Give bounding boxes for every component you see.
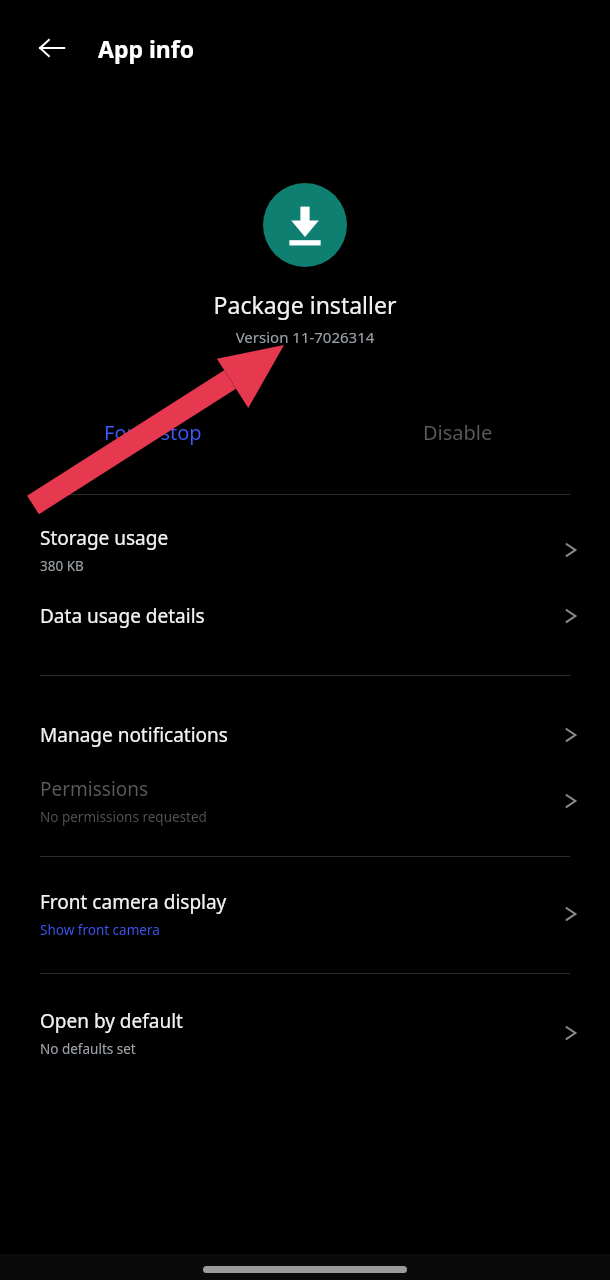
- staticText: Package installer: [0, 289, 610, 320]
- staticText: 380 KB: [40, 557, 84, 575]
- staticText: No defaults set: [40, 1040, 136, 1058]
- staticText: Front camera display: [40, 889, 227, 915]
- staticText: Version 11-7026314: [0, 327, 610, 347]
- staticText: Permissions: [40, 776, 149, 802]
- staticText: App info: [98, 33, 195, 64]
- staticText: Show front camera: [40, 921, 160, 939]
- staticText: No permissions requested: [40, 808, 207, 826]
- button[interactable]: Open by default: [0, 1000, 610, 1066]
- button[interactable]: Permissions: [0, 768, 610, 834]
- button[interactable]: Data usage details: [0, 583, 610, 649]
- button[interactable]: Disable: [305, 419, 610, 446]
- staticText: Force stop: [104, 419, 202, 446]
- staticText: Data usage details: [40, 603, 205, 629]
- button[interactable]: Back: [28, 24, 76, 72]
- button[interactable]: Front camera display: [0, 881, 610, 947]
- staticText: Storage usage: [40, 525, 169, 551]
- staticText: Disable: [423, 419, 493, 446]
- staticText: Manage notifications: [40, 722, 228, 748]
- staticText: Open by default: [40, 1008, 183, 1034]
- button[interactable]: Storage usage: [0, 517, 610, 583]
- button[interactable]: Force stop: [0, 419, 305, 446]
- button[interactable]: Manage notifications: [0, 702, 610, 768]
